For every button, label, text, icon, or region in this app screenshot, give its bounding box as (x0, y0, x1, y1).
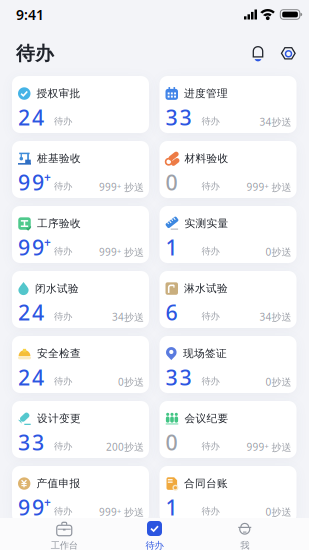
button[interactable]: 会议纪要 (159, 401, 296, 458)
staticText: 我 (240, 539, 249, 550)
staticText: 0抄送 (265, 245, 291, 259)
staticText: 9 9 (18, 493, 44, 521)
staticText: 实测实量 (184, 217, 228, 230)
staticText: 待办 (201, 245, 219, 257)
staticText: + (117, 181, 121, 191)
staticText: 999 (246, 440, 264, 454)
staticText: 桩基验收 (37, 152, 81, 165)
staticText: + (117, 246, 121, 256)
staticText: 安全检查 (37, 347, 81, 360)
staticText: 进度管理 (184, 87, 228, 100)
staticText: 2 4 (18, 103, 44, 131)
staticText: 999 (99, 505, 117, 519)
staticText: 2 4 (18, 298, 44, 326)
staticText: 待办 (54, 180, 72, 192)
button[interactable]: 通知 (252, 45, 264, 61)
staticText: 授权审批 (36, 87, 80, 100)
staticText: 抄送 (121, 246, 144, 259)
staticText: 抄送 (121, 181, 144, 194)
staticText: 产值申报 (36, 477, 80, 490)
staticText: 抄送 (121, 506, 144, 519)
staticText: 999 (246, 180, 264, 194)
staticText: 闭水试验 (35, 282, 79, 295)
button[interactable]: 授权审批 (12, 76, 149, 133)
button[interactable]: 桩基验收 (12, 141, 149, 198)
staticText: 待办 (54, 245, 72, 257)
staticText: 待办 (54, 310, 72, 322)
button[interactable]: 现场签证 (159, 336, 296, 393)
staticText: 待办 (54, 505, 72, 517)
staticText: 待办 (54, 115, 72, 127)
button[interactable]: 安全检查 (12, 336, 149, 393)
staticText: 待办 (201, 375, 219, 387)
staticText: 工作台 (51, 539, 78, 550)
button[interactable]: 材料验收 (159, 141, 296, 198)
staticText: 1 (165, 493, 177, 521)
staticText: + (117, 506, 121, 516)
staticText: 6 (165, 298, 177, 326)
staticText: 待办 (54, 440, 72, 452)
staticText: 材料验收 (184, 152, 228, 165)
staticText: 9:41 (16, 5, 44, 24)
button[interactable]: 闭水试验 (12, 271, 149, 328)
button[interactable]: 淋水试验 (159, 271, 296, 328)
staticText: 待办 (201, 505, 219, 517)
staticText: 待办 (145, 539, 163, 550)
staticText: 34抄送 (259, 310, 291, 324)
staticText: 0抄送 (118, 375, 144, 389)
staticText: 1 (165, 233, 177, 261)
staticText: 合同台账 (184, 477, 228, 490)
staticText: 待办 (201, 115, 219, 127)
button[interactable]: 合同台账 (159, 466, 296, 523)
staticText: 3 3 (18, 428, 44, 456)
staticText: + (264, 181, 268, 191)
staticText: 待办 (16, 42, 54, 65)
button[interactable]: 设计变更 (12, 401, 149, 458)
staticText: 9 9 (18, 168, 44, 196)
staticText: 9 9 (18, 233, 44, 261)
button[interactable]: 待办 (128, 521, 180, 550)
staticText: 200抄送 (106, 440, 144, 454)
staticText: 34抄送 (259, 115, 291, 129)
staticText: 抄送 (268, 181, 291, 194)
button[interactable]: 工序验收 (12, 206, 149, 263)
staticText: + (44, 494, 51, 510)
button[interactable]: 实测实量 (159, 206, 296, 263)
staticText: + (264, 441, 268, 451)
button[interactable]: 工作台 (38, 521, 90, 550)
staticText: 3 3 (165, 103, 191, 131)
staticText: 0 (165, 168, 177, 196)
button[interactable]: 设置 (281, 45, 296, 61)
staticText: 34抄送 (112, 310, 144, 324)
staticText: 现场签证 (183, 347, 227, 360)
button[interactable]: 产值申报 (12, 466, 149, 523)
staticText: 3 3 (165, 363, 191, 391)
button[interactable]: 我 (219, 521, 271, 550)
staticText: 2 4 (18, 363, 44, 391)
staticText: 待办 (201, 440, 219, 452)
staticText: 淋水试验 (184, 282, 228, 295)
button[interactable]: 进度管理 (159, 76, 296, 133)
staticText: 待办 (54, 375, 72, 387)
staticText: 设计变更 (37, 412, 81, 425)
staticText: 0 (165, 428, 177, 456)
staticText: 待办 (201, 180, 219, 192)
staticText: 会议纪要 (184, 412, 228, 425)
staticText: 999 (99, 180, 117, 194)
staticText: 999 (99, 245, 117, 259)
staticText: + (44, 169, 51, 185)
staticText: 抄送 (268, 441, 291, 454)
staticText: 0抄送 (265, 505, 291, 519)
staticText: 工序验收 (37, 217, 81, 230)
staticText: + (44, 234, 51, 250)
staticText: 0抄送 (265, 375, 291, 389)
staticText: 待办 (201, 310, 219, 322)
